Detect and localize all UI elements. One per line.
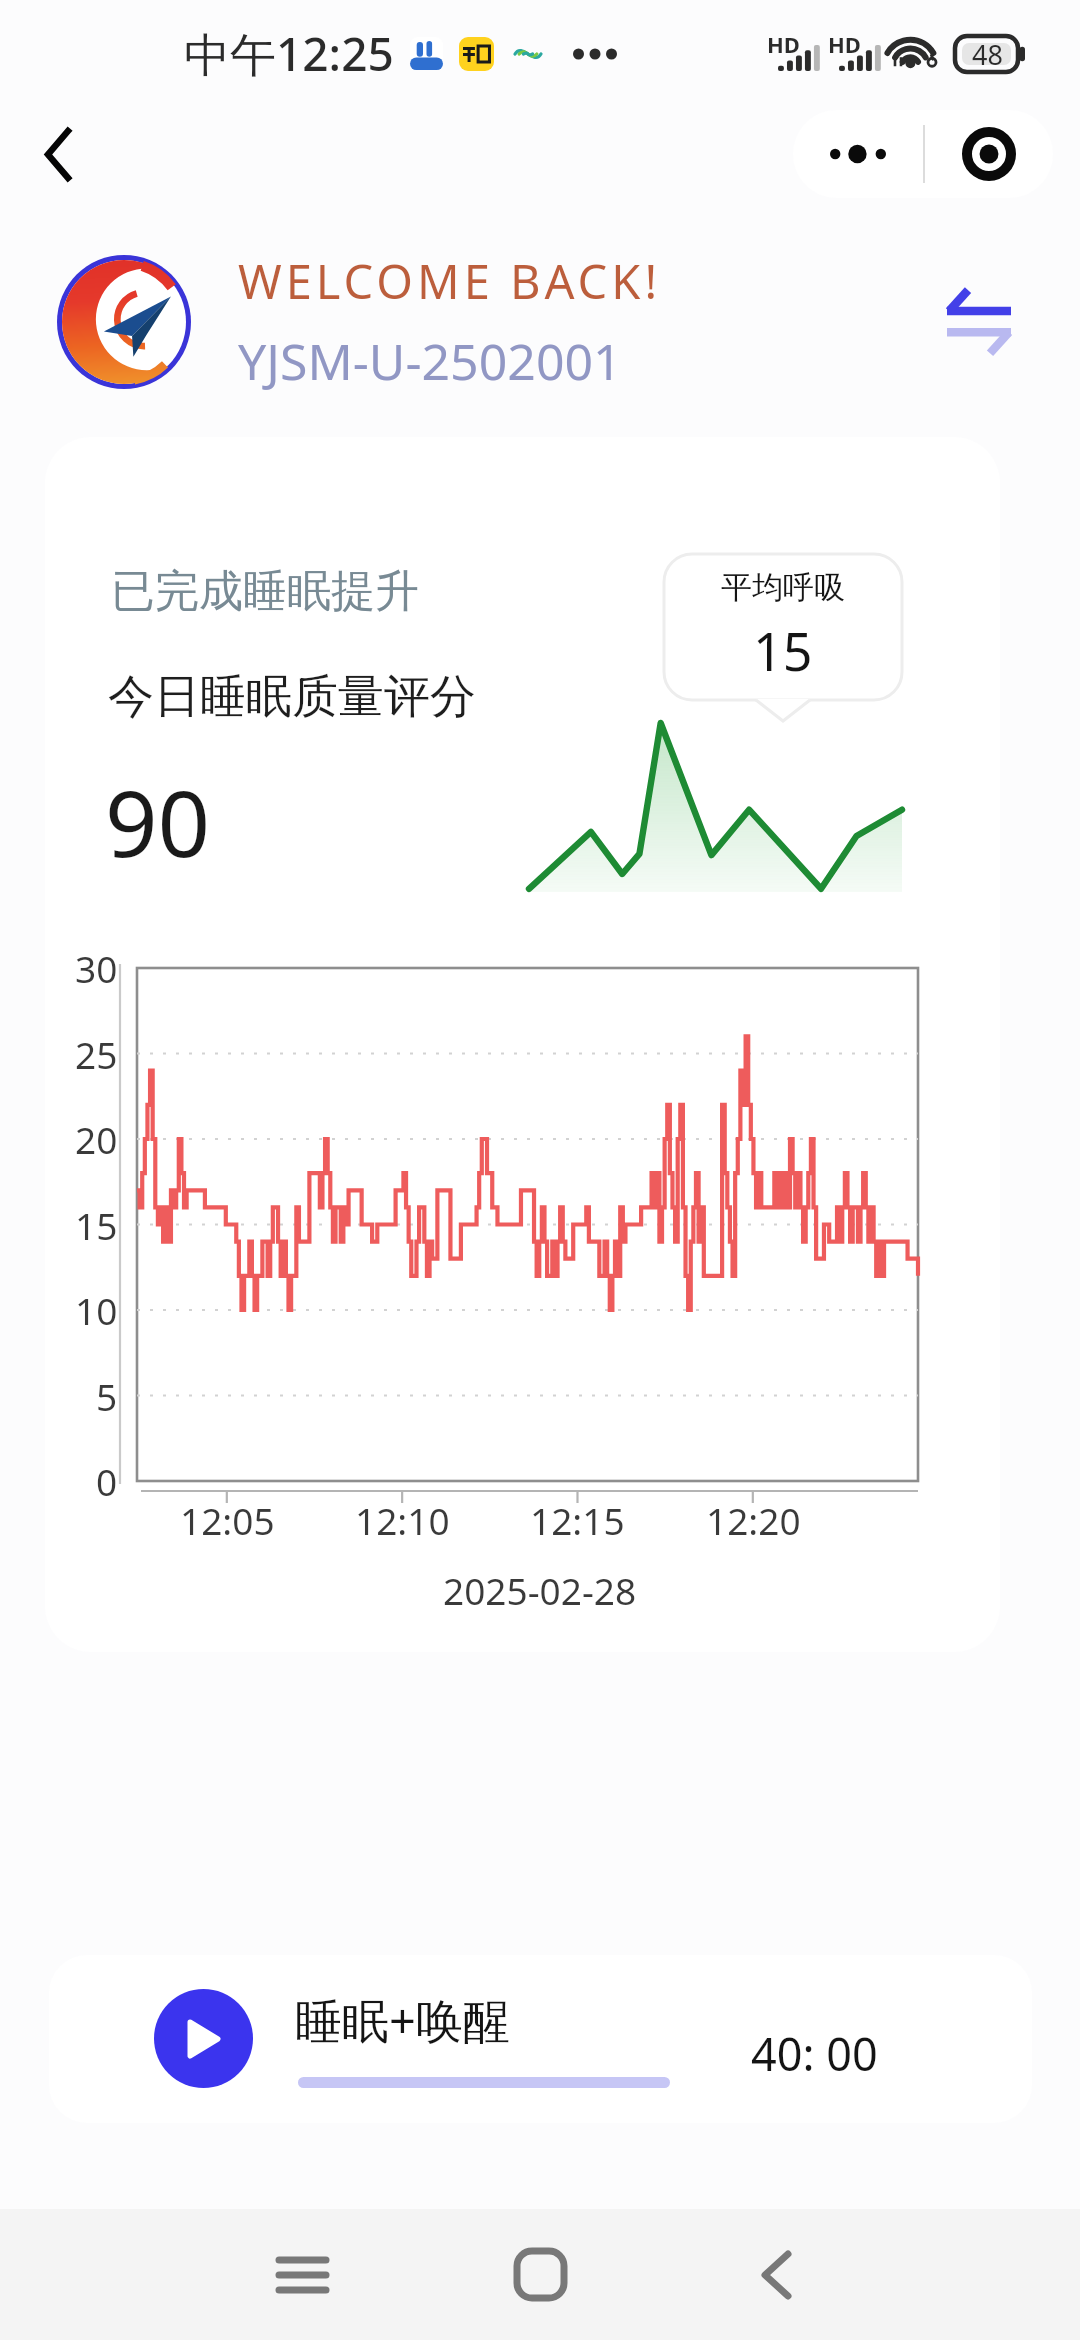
staticText: 0 bbox=[96, 1456, 118, 1506]
staticText: 30 bbox=[75, 943, 118, 993]
staticText: 12:05 bbox=[180, 1495, 275, 1545]
button[interactable]: Play bbox=[154, 1989, 253, 2088]
staticText: 2025-02-28 bbox=[443, 1565, 637, 1615]
staticText: 10 bbox=[75, 1285, 118, 1335]
staticText: WELCOME BACK! bbox=[238, 249, 662, 313]
staticText: 中午12:25 bbox=[184, 22, 394, 85]
staticText: 睡眠+唤醒 bbox=[295, 1988, 510, 2052]
button[interactable]: Back bbox=[715, 2209, 835, 2340]
staticText: 12:20 bbox=[706, 1495, 801, 1545]
button[interactable]: Home bbox=[480, 2209, 600, 2340]
staticText: HD bbox=[828, 29, 861, 59]
button[interactable]: More options bbox=[793, 110, 923, 198]
button[interactable]: Close mini program bbox=[925, 110, 1053, 198]
staticText: 40: 00 bbox=[751, 2023, 878, 2084]
staticText: 12:15 bbox=[530, 1495, 625, 1545]
button[interactable]: Switch device bbox=[914, 257, 1044, 387]
button[interactable]: Back bbox=[10, 106, 106, 202]
staticText: 20 bbox=[75, 1114, 118, 1164]
staticText: 48 bbox=[972, 36, 1003, 72]
staticText: 今日睡眠质量评分 bbox=[108, 668, 476, 726]
staticText: 15 bbox=[753, 615, 813, 686]
button[interactable]: Play bbox=[49, 1955, 1032, 2123]
staticText: 90 bbox=[105, 759, 211, 884]
staticText: 25 bbox=[75, 1029, 118, 1079]
staticText: 平均呼吸 bbox=[721, 568, 845, 607]
staticText: 15 bbox=[75, 1200, 118, 1250]
staticText: 5 bbox=[96, 1371, 118, 1421]
staticText: 12:10 bbox=[355, 1495, 450, 1545]
staticText: YJSM-U-2502001 bbox=[238, 327, 622, 395]
button[interactable]: Recents bbox=[242, 2209, 362, 2340]
staticText: 已完成睡眠提升 bbox=[111, 564, 419, 619]
staticText: HD bbox=[767, 29, 800, 59]
